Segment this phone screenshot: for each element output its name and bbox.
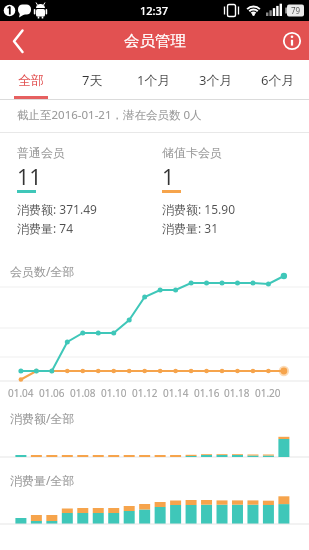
staticText: 普通会员 [17, 145, 65, 160]
staticText: 01.20 [255, 386, 281, 400]
staticText: 会员管理 [124, 31, 186, 51]
staticText: 全部 [18, 72, 44, 88]
staticText: 消费量/全部 [10, 472, 75, 488]
button[interactable]: 7天 [61, 60, 123, 99]
staticText: 消费额: 371.49 [17, 201, 97, 217]
staticText: 消费额/全部 [10, 410, 75, 426]
staticText: 01.12 [132, 386, 158, 400]
staticText: 7天 [82, 71, 103, 89]
button[interactable]: 普通会员 [17, 138, 147, 240]
staticText: 消费量: 31 [162, 220, 219, 236]
button[interactable]: 全部 [0, 60, 61, 99]
staticText: 01.18 [224, 386, 250, 400]
staticText: 12:37 [140, 3, 169, 18]
staticText: 01.06 [39, 386, 65, 400]
button[interactable] [273, 21, 309, 60]
staticText: 储值卡会员 [162, 145, 222, 160]
staticText: 消费量: 74 [17, 220, 74, 236]
staticText: 01.16 [194, 386, 220, 400]
staticText: 79 [291, 5, 301, 16]
staticText: 1 [162, 162, 175, 191]
button[interactable]: 储值卡会员 [162, 138, 292, 240]
button[interactable] [0, 21, 42, 60]
staticText: 01.08 [70, 386, 96, 400]
staticText: 3个月 [199, 71, 233, 89]
staticText: 消费额: 15.90 [162, 201, 236, 217]
staticText: 01.10 [101, 386, 127, 400]
button[interactable]: 6个月 [247, 60, 309, 99]
button[interactable]: 1个月 [123, 60, 185, 99]
staticText: 截止至2016-01-21，潜在会员数 0人 [17, 107, 202, 123]
staticText: 01.14 [163, 386, 189, 400]
staticText: 01.04 [8, 386, 34, 400]
staticText: 会员数/全部 [10, 263, 75, 279]
staticText: 6个月 [261, 71, 295, 89]
button[interactable]: 3个月 [185, 60, 247, 99]
staticText: 11 [17, 162, 42, 191]
staticText: 1个月 [137, 71, 171, 89]
